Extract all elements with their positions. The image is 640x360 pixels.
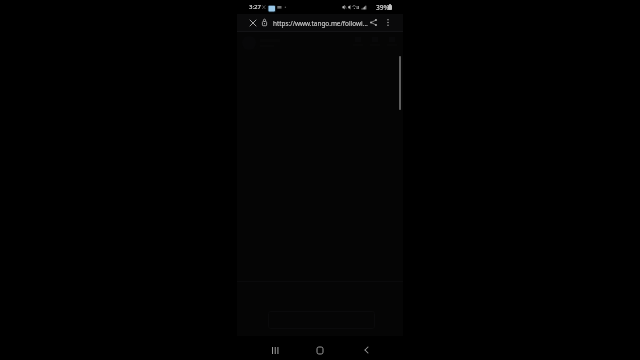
button[interactable]: Close: [244, 14, 261, 31]
staticText: 3:27: [249, 3, 261, 11]
button[interactable]: Share: [365, 14, 381, 31]
button[interactable]: More options: [380, 14, 396, 31]
staticText: https://www.tango.me/followi…: [273, 19, 368, 28]
button[interactable]: Home: [303, 338, 337, 360]
staticText: 39%: [376, 3, 390, 12]
button[interactable]: Recent apps: [258, 338, 292, 360]
button[interactable]: Back: [349, 338, 383, 360]
